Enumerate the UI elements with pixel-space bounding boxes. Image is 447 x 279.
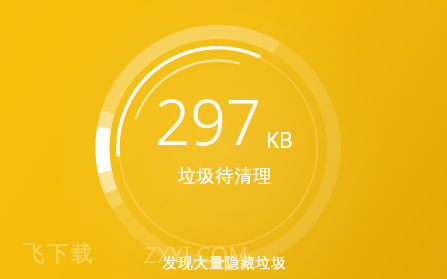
staticText: 垃圾待清理 xyxy=(177,165,272,188)
button[interactable]: 297 xyxy=(143,75,305,192)
staticText: 297 xyxy=(155,79,262,163)
staticText: KB xyxy=(266,126,293,155)
button[interactable]: 发现大量隐藏垃圾 xyxy=(0,254,447,279)
staticText: ZXYI.COM xyxy=(144,239,249,269)
staticText: 发现大量隐藏垃圾 xyxy=(162,254,286,273)
staticText: 飞下载 xyxy=(22,240,94,268)
